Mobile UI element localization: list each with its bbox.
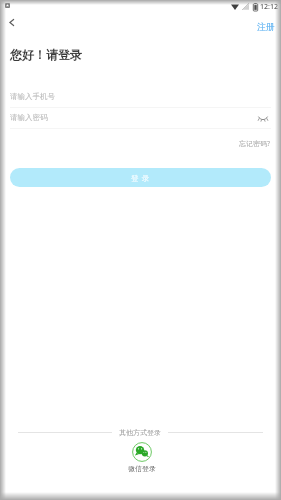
button[interactable]: 微信登录: [118, 442, 166, 478]
staticText: 登 录: [131, 173, 150, 183]
staticText: 您好！请登录: [10, 47, 82, 62]
button[interactable]: Back: [0, 11, 22, 33]
staticText: 12:12: [260, 2, 278, 12]
button[interactable]: 请输入手机号: [10, 86, 271, 107]
button[interactable]: 注册: [252, 14, 279, 38]
staticText: 请输入密码: [10, 113, 48, 122]
staticText: 忘记密码?: [239, 139, 271, 149]
button[interactable]: Show password: [255, 110, 271, 126]
button[interactable]: 登 录: [10, 168, 271, 187]
staticText: 请输入手机号: [10, 92, 55, 101]
button[interactable]: 请输入密码: [10, 107, 271, 128]
staticText: 微信登录: [128, 464, 156, 473]
staticText: 其他方式登录: [119, 428, 161, 437]
button[interactable]: 忘记密码?: [232, 135, 271, 153]
staticText: 注册: [257, 21, 275, 32]
